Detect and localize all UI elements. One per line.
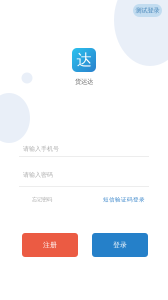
staticText: 注册 <box>43 241 57 249</box>
button[interactable]: 登录 <box>92 233 148 257</box>
staticText: 达 <box>76 50 91 70</box>
staticText: 测试登录 <box>135 7 159 14</box>
staticText: 货运达 <box>75 77 93 86</box>
staticText: 请输入手机号 <box>23 145 59 153</box>
staticText: 短信验证码登录 <box>103 196 145 203</box>
button[interactable]: 忘记密码 <box>32 196 52 203</box>
button[interactable]: 测试登录 <box>133 4 162 17</box>
button[interactable]: 注册 <box>22 233 78 257</box>
staticText: 请输入密码 <box>23 171 53 179</box>
button[interactable]: 短信验证码登录 <box>103 196 145 203</box>
staticText: 忘记密码 <box>32 196 52 203</box>
staticText: 登录 <box>113 241 127 249</box>
